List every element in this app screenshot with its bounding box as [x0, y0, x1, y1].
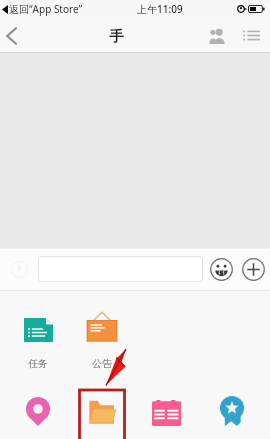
button[interactable]: Back	[0, 18, 32, 53]
button[interactable]: Emoji	[206, 252, 236, 286]
staticText: 上午11:09	[137, 2, 183, 16]
button[interactable]	[134, 396, 199, 426]
button[interactable]	[70, 396, 134, 426]
button[interactable]: 任务	[6, 311, 70, 342]
button[interactable]: Contacts	[201, 18, 233, 53]
button[interactable]: Menu	[233, 18, 270, 53]
button[interactable]: 公告	[70, 311, 134, 342]
button[interactable]	[6, 396, 70, 426]
button[interactable]: More	[236, 252, 270, 286]
button[interactable]: Message input	[38, 256, 203, 282]
staticText: 任务	[28, 357, 48, 370]
button[interactable]	[199, 396, 264, 426]
staticText: 公告	[92, 357, 112, 370]
staticText: 手	[109, 27, 124, 45]
staticText: 返回“App Store”	[9, 2, 83, 16]
